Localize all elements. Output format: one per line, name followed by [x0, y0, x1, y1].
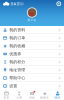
staticText: 我的积分	[9, 59, 25, 64]
button[interactable]: 帮助中心	[0, 74, 64, 82]
button[interactable]: 我的收藏	[0, 42, 64, 50]
staticText: 分类	[16, 96, 22, 99]
button[interactable]: 地址管理	[0, 66, 64, 74]
staticText: 我的	[55, 96, 61, 99]
staticText: 我的收藏	[9, 43, 25, 48]
staticText: BAIDU	[10, 1, 23, 6]
button[interactable]: 优惠券	[0, 50, 64, 58]
button[interactable]: 购物车	[38, 90, 51, 100]
staticText: 设置	[9, 83, 17, 88]
staticText: 优惠券	[9, 51, 21, 56]
button[interactable]: 首页	[0, 90, 13, 100]
staticText: 地址管理	[9, 67, 25, 72]
staticText: 首页	[3, 96, 9, 99]
staticText: 购物车	[40, 96, 49, 99]
staticText: 消息	[29, 96, 35, 99]
staticText: 帮助中心	[9, 75, 25, 80]
staticText: 用户名	[27, 18, 36, 22]
button[interactable]: Settings	[57, 1, 61, 6]
button[interactable]: 我的积分	[0, 58, 64, 66]
button[interactable]: 我的	[51, 90, 64, 100]
button[interactable]: 分类	[13, 90, 26, 100]
button[interactable]: 消息	[26, 90, 38, 100]
button[interactable]: 设置	[0, 82, 64, 90]
button[interactable]: 我的资料	[0, 26, 64, 34]
staticText: 我的资料	[9, 27, 25, 32]
button[interactable]: 我的订单	[0, 34, 64, 42]
staticText: 我的订单	[9, 35, 25, 40]
